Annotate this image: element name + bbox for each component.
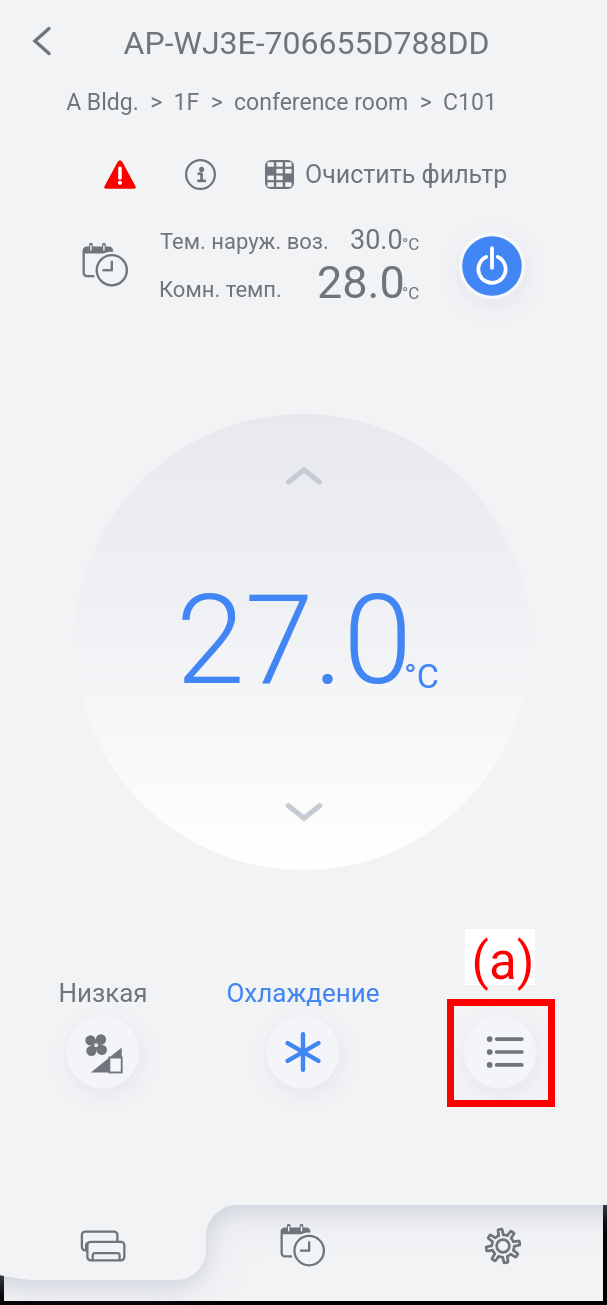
button[interactable]: Air conditioner (53, 1204, 153, 1288)
button[interactable]: Increase temperature (260, 432, 348, 520)
button[interactable]: Decrease temperature (260, 768, 348, 856)
staticText: Охлаждение (213, 978, 393, 1008)
button[interactable]: Back (8, 11, 68, 71)
staticText: 30.0 (350, 224, 403, 256)
staticText: Очистить фильтр (305, 160, 508, 189)
button[interactable]: Schedule (253, 1204, 353, 1288)
staticText: °C (404, 656, 439, 696)
staticText: °C (402, 234, 420, 254)
button[interactable]: Warning (96, 149, 144, 197)
staticText: 28.0 (317, 256, 405, 309)
button[interactable]: Cooling mode (213, 972, 393, 1096)
button[interactable]: Power (444, 218, 540, 314)
button[interactable]: Information (176, 150, 224, 198)
staticText: Низкая (13, 978, 193, 1008)
staticText: AP-WJ3E-706655D788DD (7, 24, 606, 62)
staticText: Комн. темп. (159, 277, 282, 303)
staticText: A Bldg. > 1F > conference room > C101 (0, 89, 581, 116)
button[interactable]: More settings (410, 972, 590, 1096)
staticText: Тем. наруж. воз. (160, 229, 329, 255)
staticText: 27.0 (176, 568, 412, 713)
staticText: °C (402, 283, 420, 303)
button[interactable]: Очистить фильтр (265, 152, 508, 196)
button[interactable]: Fan speed low (13, 972, 193, 1096)
button[interactable]: Settings (453, 1204, 553, 1288)
staticText: (a) (468, 932, 538, 992)
